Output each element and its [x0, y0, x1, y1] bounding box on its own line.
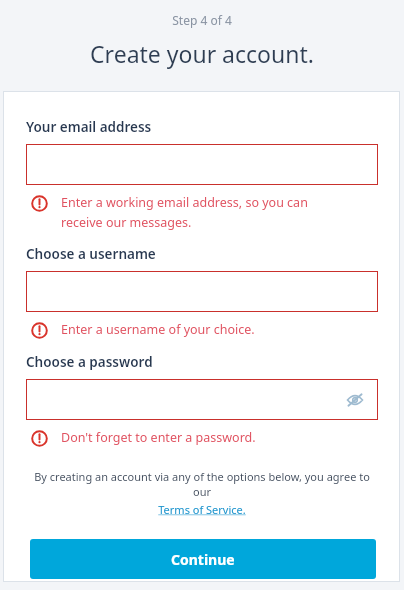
- button[interactable]: Show password: [26, 379, 378, 420]
- staticText: Enter a working email address, so you ca…: [61, 194, 308, 211]
- staticText: Continue: [171, 550, 235, 569]
- staticText: Enter a username of your choice.: [61, 321, 255, 338]
- staticText: Choose a password: [26, 353, 153, 371]
- staticText: Terms of Service.: [158, 502, 246, 517]
- staticText: receive our messages.: [61, 214, 192, 231]
- staticText: Step 4 of 4: [0, 12, 404, 28]
- staticText: Don't forget to enter a password.: [61, 429, 256, 446]
- staticText: Choose a username: [26, 245, 156, 263]
- staticText: By creating an account via any of the op…: [26, 469, 378, 499]
- button[interactable]: [26, 144, 378, 185]
- staticText: Create your account.: [0, 38, 404, 69]
- button[interactable]: [26, 271, 378, 312]
- button[interactable]: Show password: [342, 387, 368, 413]
- button[interactable]: Terms of Service.: [158, 502, 246, 517]
- staticText: Your email address: [26, 118, 152, 136]
- button[interactable]: Continue: [30, 539, 376, 579]
